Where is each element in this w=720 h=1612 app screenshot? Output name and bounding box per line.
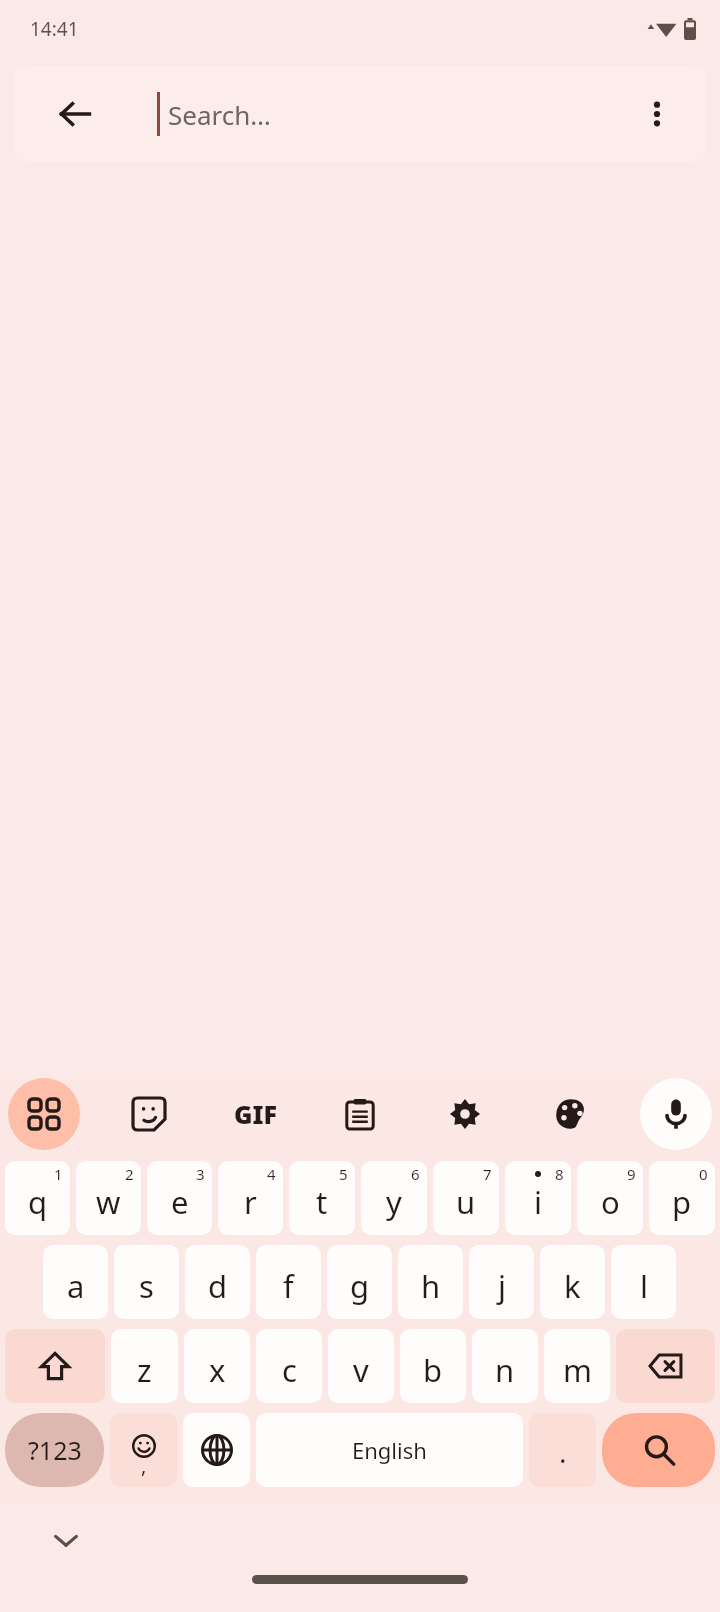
button[interactable]: g (327, 1245, 392, 1319)
button[interactable]: . (529, 1413, 596, 1487)
staticText: p (672, 1181, 692, 1223)
staticText: u (456, 1181, 476, 1223)
button[interactable]: c (256, 1329, 322, 1403)
button[interactable]: ?123 (5, 1413, 104, 1487)
staticText: f (283, 1265, 294, 1307)
staticText: 1 (54, 1164, 63, 1184)
button[interactable]: Themes (535, 1078, 607, 1150)
staticText: v (353, 1349, 369, 1391)
staticText: i (534, 1181, 542, 1223)
staticText: 6 (411, 1164, 420, 1184)
staticText: d (208, 1265, 228, 1307)
button[interactable]: Keyboard modes (8, 1078, 80, 1150)
button[interactable]: h (398, 1245, 463, 1319)
staticText: GIF (234, 1097, 277, 1131)
button[interactable]: j (469, 1245, 534, 1319)
button[interactable]: English (256, 1413, 523, 1487)
button[interactable]: Hide keyboard (40, 1514, 92, 1566)
button[interactable]: e (147, 1161, 212, 1235)
button[interactable]: u (433, 1161, 499, 1235)
button[interactable]: b (400, 1329, 466, 1403)
button[interactable]: q (5, 1161, 70, 1235)
staticText: o (601, 1181, 620, 1223)
staticText: , (141, 1452, 147, 1479)
staticText: a (67, 1265, 85, 1307)
staticText: x (209, 1349, 226, 1391)
button[interactable]: a (43, 1245, 108, 1319)
staticText: e (171, 1181, 189, 1223)
button[interactable]: z (111, 1329, 178, 1403)
staticText: k (564, 1265, 581, 1307)
staticText: g (350, 1265, 370, 1307)
button[interactable]: Voice input (640, 1078, 712, 1150)
button[interactable]: i (505, 1161, 571, 1235)
staticText: b (423, 1349, 443, 1391)
button[interactable]: Clipboard (324, 1078, 396, 1150)
button[interactable]: p (649, 1161, 715, 1235)
staticText: c (282, 1349, 297, 1391)
button[interactable]: s (114, 1245, 179, 1319)
staticText: English (352, 1435, 427, 1465)
staticText: 8 (555, 1164, 564, 1184)
staticText: l (640, 1265, 648, 1307)
button[interactable]: n (472, 1329, 538, 1403)
staticText: . (559, 1433, 567, 1471)
button[interactable]: m (544, 1329, 610, 1403)
button[interactable]: Emoji (110, 1413, 177, 1487)
button[interactable]: Shift (5, 1329, 105, 1403)
button[interactable]: GIF (219, 1078, 291, 1150)
button[interactable]: Switch language (183, 1413, 250, 1487)
staticText: Search… (168, 97, 271, 132)
button[interactable]: Settings (429, 1078, 501, 1150)
button[interactable]: v (328, 1329, 394, 1403)
button[interactable]: d (185, 1245, 250, 1319)
staticText: h (421, 1265, 441, 1307)
button[interactable]: o (577, 1161, 643, 1235)
staticText: 14:41 (30, 16, 79, 42)
staticText: n (495, 1349, 515, 1391)
staticText: z (137, 1349, 152, 1391)
button[interactable]: r (218, 1161, 283, 1235)
staticText: q (28, 1181, 48, 1223)
staticText: 7 (483, 1164, 492, 1184)
button[interactable]: k (540, 1245, 605, 1319)
staticText: r (244, 1181, 257, 1223)
button[interactable]: l (611, 1245, 676, 1319)
staticText: 0 (699, 1164, 708, 1184)
button[interactable]: x (184, 1329, 250, 1403)
staticText: s (139, 1265, 154, 1307)
staticText: m (563, 1349, 592, 1391)
staticText: ?123 (28, 1433, 82, 1467)
staticText: w (96, 1181, 121, 1223)
staticText: 4 (267, 1164, 276, 1184)
button[interactable]: w (76, 1161, 141, 1235)
button[interactable]: Search (602, 1413, 715, 1487)
button[interactable]: t (289, 1161, 355, 1235)
staticText: j (498, 1265, 506, 1307)
button[interactable]: y (361, 1161, 427, 1235)
staticText: t (316, 1181, 328, 1223)
button[interactable]: Back (13, 66, 707, 162)
staticText: y (386, 1181, 402, 1223)
staticText: 2 (125, 1164, 134, 1184)
staticText: 3 (196, 1164, 205, 1184)
button[interactable]: Back (49, 88, 101, 140)
button[interactable]: Backspace (616, 1329, 715, 1403)
button[interactable]: More options (633, 90, 681, 138)
staticText: 9 (627, 1164, 636, 1184)
staticText: 5 (339, 1164, 348, 1184)
button[interactable]: Stickers (113, 1078, 185, 1150)
button[interactable]: f (256, 1245, 321, 1319)
